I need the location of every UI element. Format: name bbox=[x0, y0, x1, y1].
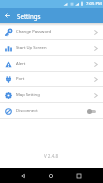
staticText: Map Setting bbox=[16, 92, 40, 98]
other: Disconnect toggle bbox=[87, 108, 96, 114]
staticText: 7:05 PM bbox=[86, 1, 102, 7]
button[interactable]: Alert bbox=[0, 56, 103, 72]
staticText: Change Password bbox=[16, 29, 52, 35]
button[interactable]: Back bbox=[0, 8, 15, 23]
button[interactable]: Change Password bbox=[0, 24, 103, 40]
button[interactable]: Port bbox=[0, 71, 103, 87]
staticText: Alert bbox=[16, 61, 26, 67]
staticText: Port bbox=[16, 76, 25, 82]
button[interactable]: Recent apps bbox=[70, 168, 87, 183]
button[interactable]: Start Up Screen bbox=[0, 40, 103, 56]
button[interactable]: Map Setting bbox=[0, 87, 103, 103]
button[interactable]: Home bbox=[42, 168, 59, 183]
button[interactable]: Back bbox=[14, 168, 31, 183]
staticText: Disconnect bbox=[16, 108, 38, 114]
staticText: V 2.4.8 bbox=[44, 153, 59, 159]
staticText: Settings bbox=[17, 12, 41, 20]
button[interactable]: Disconnect bbox=[0, 103, 103, 119]
staticText: Start Up Screen bbox=[16, 45, 47, 51]
